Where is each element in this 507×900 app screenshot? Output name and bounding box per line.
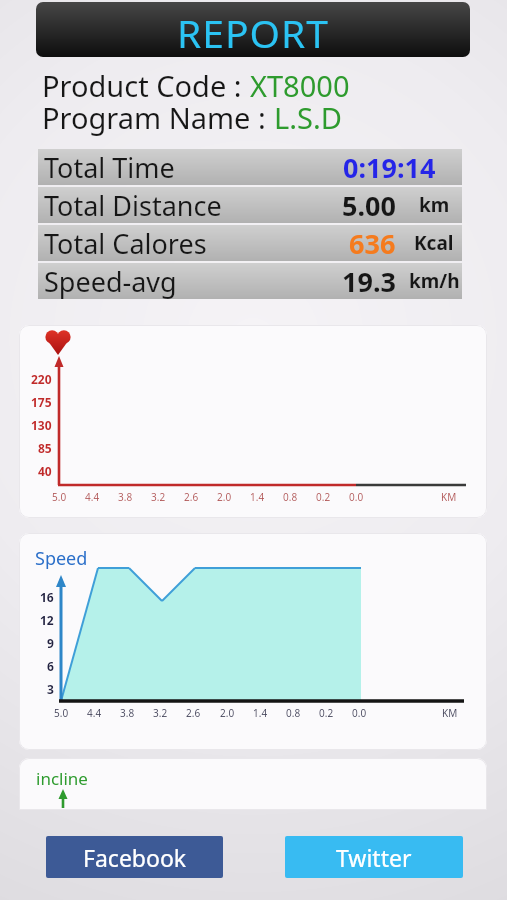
staticText: 0:19:14 <box>343 149 436 185</box>
staticText: 6 <box>47 658 54 674</box>
staticText: REPORT <box>177 6 329 57</box>
staticText: 175 <box>31 394 52 410</box>
staticText: 3.2 <box>151 490 166 504</box>
staticText: 0.8 <box>286 706 301 720</box>
staticText: Program Name : <box>42 98 274 137</box>
staticText: Twitter <box>336 842 412 873</box>
button[interactable]: REPORT <box>36 2 470 57</box>
staticText: Kcal <box>414 230 454 256</box>
staticText: 19.3 <box>342 263 396 299</box>
button[interactable]: Facebook <box>46 836 223 878</box>
button[interactable]: incline <box>19 758 487 810</box>
staticText: Product Code : <box>42 66 250 105</box>
staticText: Total Time <box>44 149 175 185</box>
staticText: 3.2 <box>153 706 168 720</box>
staticText: incline <box>36 767 88 790</box>
button[interactable]: 220 <box>19 325 487 518</box>
button[interactable]: Twitter <box>285 836 463 878</box>
staticText: 1.4 <box>250 490 265 504</box>
staticText: KM <box>441 490 457 504</box>
staticText: 4.4 <box>85 490 100 504</box>
staticText: 4.4 <box>87 706 102 720</box>
staticText: 3 <box>47 681 54 697</box>
staticText: 2.0 <box>220 706 235 720</box>
staticText: 2.6 <box>184 490 199 504</box>
staticText: 85 <box>38 440 52 456</box>
staticText: 40 <box>38 463 52 479</box>
staticText: Speed <box>35 546 88 571</box>
staticText: 3.8 <box>118 490 133 504</box>
staticText: 16 <box>40 589 54 605</box>
staticText: 0.8 <box>283 490 298 504</box>
staticText: 5.00 <box>342 187 396 223</box>
staticText: 5.0 <box>54 706 69 720</box>
staticText: 5.0 <box>52 490 67 504</box>
staticText: Total Calores <box>44 225 207 261</box>
staticText: km/h <box>409 268 460 294</box>
staticText: 636 <box>349 225 396 261</box>
staticText: 1.4 <box>253 706 268 720</box>
staticText: 0.2 <box>319 706 334 720</box>
staticText: 9 <box>47 635 54 651</box>
staticText: Facebook <box>83 842 187 873</box>
staticText: 3.8 <box>120 706 135 720</box>
staticText: L.S.D <box>274 98 342 137</box>
staticText: 0.2 <box>316 490 331 504</box>
staticText: 2.0 <box>217 490 232 504</box>
staticText: 0.0 <box>352 706 367 720</box>
staticText: 0.0 <box>349 490 364 504</box>
staticText: 130 <box>31 417 52 433</box>
staticText: km <box>419 192 450 218</box>
staticText: 220 <box>31 371 52 387</box>
staticText: 12 <box>40 612 54 628</box>
staticText: XT8000 <box>250 66 350 105</box>
staticText: Speed-avg <box>44 263 177 299</box>
button[interactable]: Speed <box>19 533 487 750</box>
staticText: 2.6 <box>186 706 201 720</box>
staticText: Total Distance <box>44 187 222 223</box>
staticText: KM <box>442 706 458 720</box>
